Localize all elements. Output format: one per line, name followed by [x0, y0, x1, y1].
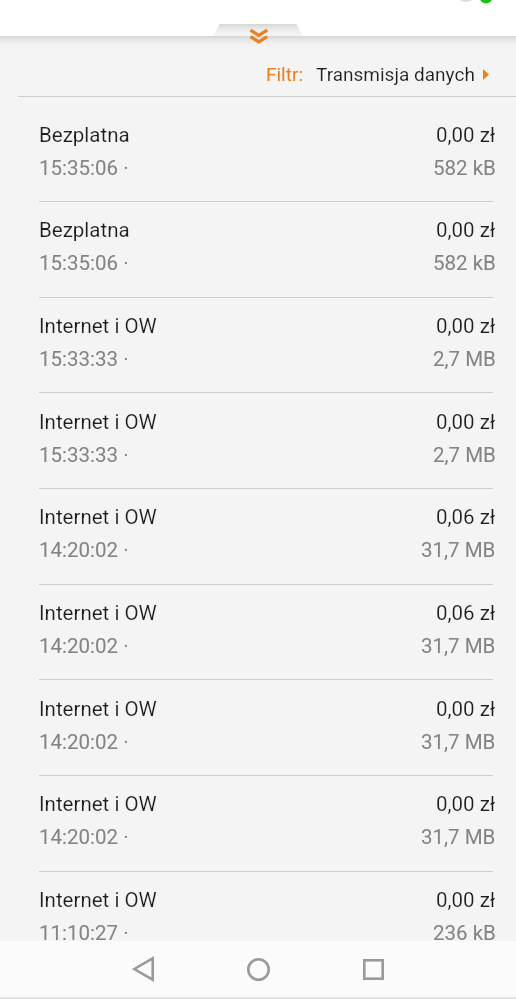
button[interactable]: Back [107, 941, 179, 997]
staticText: Bezplatna [39, 218, 130, 242]
button[interactable]: Home [222, 941, 294, 997]
staticText: Internet i OW [39, 410, 157, 434]
staticText: 31,7 MB [421, 634, 496, 658]
staticText: 14:20:02 · [39, 538, 129, 562]
staticText: 2,7 MB [433, 347, 496, 371]
staticText: 0,00 zł [436, 314, 496, 338]
button[interactable]: Expand [247, 27, 270, 43]
staticText: Internet i OW [39, 601, 157, 625]
staticText: Internet i OW [39, 697, 157, 721]
staticText: 15:35:06 · [39, 156, 129, 180]
button[interactable]: Internet i OW [0, 383, 516, 478]
staticText: Bezplatna [39, 123, 130, 147]
staticText: 2,7 MB [433, 443, 496, 467]
button[interactable]: Internet i OW [0, 478, 516, 573]
button[interactable]: Bezplatna [0, 191, 516, 286]
staticText: 0,00 zł [436, 792, 496, 816]
button[interactable]: Internet i OW [0, 765, 516, 860]
button[interactable]: Filtr: [266, 63, 489, 85]
staticText: Internet i OW [39, 792, 157, 816]
staticText: 0,00 zł [436, 697, 496, 721]
staticText: 0,00 zł [436, 410, 496, 434]
staticText: 0,00 zł [436, 218, 496, 242]
button[interactable]: Internet i OW [0, 861, 516, 956]
staticText: Internet i OW [39, 314, 157, 338]
button[interactable]: Bezplatna [0, 96, 516, 191]
button[interactable]: Recents [337, 941, 409, 997]
staticText: 0,00 zł [436, 888, 496, 912]
staticText: 15:35:06 · [39, 251, 129, 275]
staticText: 14:20:02 · [39, 730, 129, 754]
staticText: Internet i OW [39, 505, 157, 529]
staticText: 11:10:27 · [39, 921, 129, 945]
staticText: 0,06 zł [436, 601, 496, 625]
staticText: 31,7 MB [421, 825, 496, 849]
staticText: 31,7 MB [421, 730, 496, 754]
staticText: 15:33:33 · [39, 443, 129, 467]
staticText: 15:33:33 · [39, 347, 129, 371]
staticText: Filtr: [266, 63, 303, 85]
staticText: 14:20:02 · [39, 634, 129, 658]
staticText: 582 kB [433, 156, 496, 180]
staticText: Transmisja danych [316, 63, 475, 85]
staticText: 0,06 zł [436, 505, 496, 529]
button[interactable]: Internet i OW [0, 287, 516, 382]
staticText: 236 kB [433, 921, 496, 945]
staticText: 0,00 zł [436, 123, 496, 147]
button[interactable]: Internet i OW [0, 574, 516, 669]
staticText: 582 kB [433, 251, 496, 275]
staticText: 14:20:02 · [39, 825, 129, 849]
button[interactable]: Internet i OW [0, 670, 516, 765]
staticText: 31,7 MB [421, 538, 496, 562]
staticText: Internet i OW [39, 888, 157, 912]
